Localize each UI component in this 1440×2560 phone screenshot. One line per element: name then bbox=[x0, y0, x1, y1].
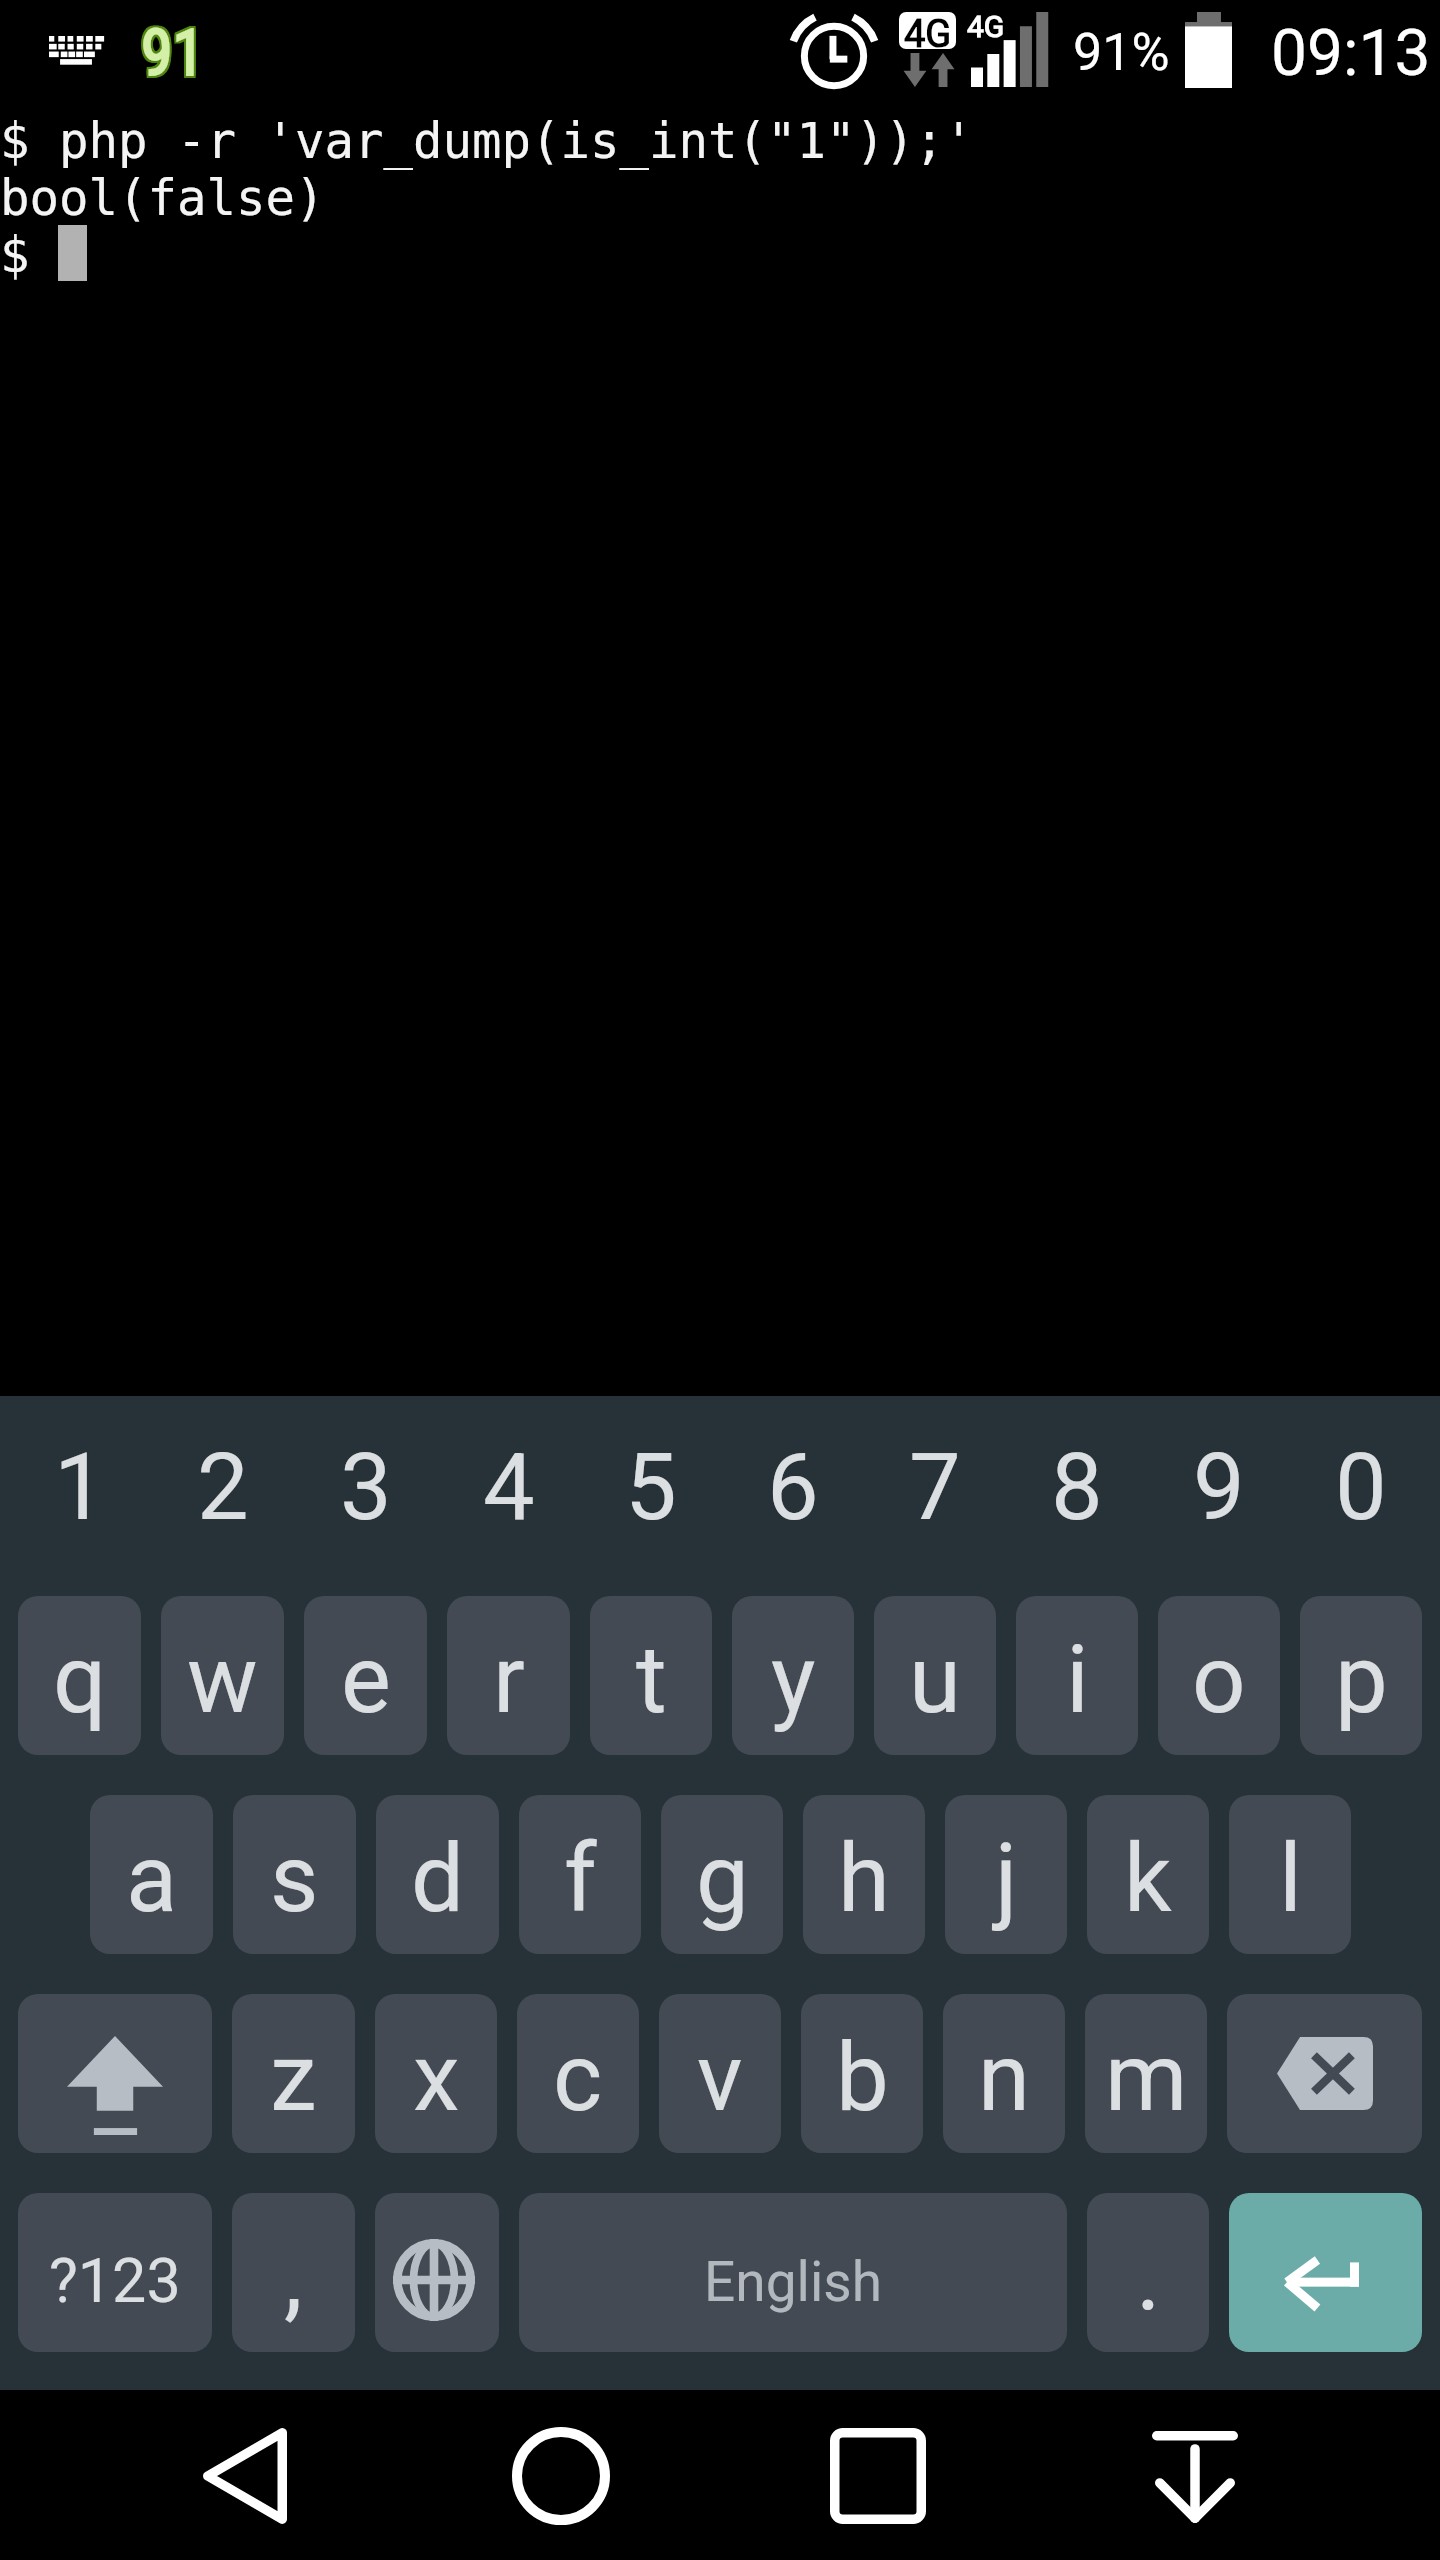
staticText: d bbox=[411, 1824, 465, 1934]
staticText: 09:13 bbox=[1271, 16, 1431, 91]
staticText: p bbox=[1335, 1625, 1388, 1735]
staticText: 5 bbox=[625, 1434, 677, 1542]
button[interactable]: h bbox=[803, 1795, 925, 1954]
button[interactable]: 7 bbox=[864, 1396, 1006, 1590]
staticText: v bbox=[697, 2023, 743, 2133]
button[interactable]: English bbox=[519, 2193, 1067, 2352]
button[interactable]: , bbox=[232, 2193, 355, 2352]
staticText: 0 bbox=[1335, 1434, 1387, 1542]
button[interactable]: 4 bbox=[437, 1396, 580, 1590]
staticText: f bbox=[564, 1824, 597, 1934]
button[interactable]: . bbox=[1087, 2193, 1209, 2352]
button[interactable]: i bbox=[1016, 1596, 1138, 1755]
staticText: 91 bbox=[143, 14, 207, 89]
staticText: 4G bbox=[904, 12, 952, 49]
button[interactable]: t bbox=[590, 1596, 712, 1755]
staticText: 9 bbox=[1193, 1434, 1245, 1542]
staticText: u bbox=[909, 1625, 961, 1735]
staticText: s bbox=[270, 1824, 319, 1934]
button[interactable]: 9 bbox=[1148, 1396, 1290, 1590]
staticText: 4G bbox=[967, 9, 1005, 44]
staticText: English bbox=[704, 2250, 882, 2314]
button[interactable]: j bbox=[945, 1795, 1067, 1954]
button[interactable]: n bbox=[943, 1994, 1065, 2153]
button[interactable]: Hide keyboard bbox=[1152, 2431, 1238, 2523]
staticText: 6 bbox=[767, 1434, 819, 1542]
staticText: 91 bbox=[143, 16, 207, 91]
staticText: 91 bbox=[141, 16, 205, 91]
button[interactable]: g bbox=[661, 1795, 783, 1954]
button[interactable]: c bbox=[517, 1994, 639, 2153]
staticText: w bbox=[187, 1625, 258, 1735]
staticText: 91 bbox=[139, 16, 203, 91]
button[interactable]: q bbox=[18, 1596, 141, 1755]
staticText: , bbox=[284, 2222, 303, 2332]
button[interactable]: o bbox=[1158, 1596, 1280, 1755]
button[interactable]: z bbox=[232, 1994, 355, 2153]
button[interactable]: w bbox=[161, 1596, 284, 1755]
button[interactable]: Recent apps bbox=[830, 2428, 926, 2524]
button[interactable]: 6 bbox=[722, 1396, 864, 1590]
staticText: x bbox=[413, 2023, 460, 2133]
staticText: h bbox=[838, 1824, 890, 1934]
button[interactable]: 0 bbox=[1290, 1396, 1432, 1590]
staticText: c bbox=[553, 2023, 603, 2133]
button[interactable]: 8 bbox=[1006, 1396, 1148, 1590]
button[interactable]: 1 bbox=[8, 1396, 151, 1590]
staticText: ?123 bbox=[49, 2245, 181, 2316]
button[interactable]: p bbox=[1300, 1596, 1422, 1755]
button[interactable]: e bbox=[304, 1596, 427, 1755]
staticText: 4 bbox=[483, 1434, 535, 1542]
staticText: 91 bbox=[141, 18, 205, 93]
button[interactable]: f bbox=[519, 1795, 641, 1954]
button[interactable]: r bbox=[447, 1596, 570, 1755]
staticText: 7 bbox=[909, 1434, 961, 1542]
button[interactable]: Back bbox=[203, 2428, 287, 2524]
button[interactable]: a bbox=[90, 1795, 213, 1954]
staticText: q bbox=[53, 1625, 107, 1735]
button[interactable]: d bbox=[376, 1795, 499, 1954]
button[interactable]: s bbox=[233, 1795, 356, 1954]
button[interactable]: y bbox=[732, 1596, 854, 1755]
staticText: j bbox=[995, 1824, 1018, 1934]
button[interactable]: l bbox=[1229, 1795, 1351, 1954]
staticText: a bbox=[126, 1824, 178, 1934]
staticText: z bbox=[270, 2023, 317, 2133]
staticText: 91 bbox=[139, 14, 203, 89]
staticText: 3 bbox=[340, 1434, 392, 1542]
staticText: r bbox=[493, 1625, 525, 1735]
staticText: bool(false) bbox=[0, 170, 325, 227]
staticText: m bbox=[1105, 2023, 1188, 2133]
button[interactable]: Enter bbox=[1229, 2193, 1422, 2352]
button[interactable]: b bbox=[801, 1994, 923, 2153]
staticText: o bbox=[1192, 1625, 1246, 1735]
staticText: 2 bbox=[197, 1434, 249, 1542]
staticText: $ php -r 'var_dump(is_int("1"));' bbox=[0, 113, 974, 170]
button[interactable]: k bbox=[1087, 1795, 1209, 1954]
button[interactable]: v bbox=[659, 1994, 781, 2153]
staticText: 8 bbox=[1051, 1434, 1103, 1542]
staticText: y bbox=[771, 1625, 816, 1735]
button[interactable]: Change keyboard language bbox=[375, 2193, 499, 2352]
button[interactable]: m bbox=[1085, 1994, 1207, 2153]
staticText: n bbox=[978, 2023, 1030, 2133]
staticText: i bbox=[1066, 1625, 1089, 1735]
button[interactable]: Shift bbox=[18, 1994, 212, 2153]
button[interactable]: Backspace bbox=[1227, 1994, 1422, 2153]
staticText: 91 bbox=[141, 14, 205, 89]
staticText: . bbox=[1136, 2222, 1161, 2332]
staticText: g bbox=[696, 1824, 749, 1934]
staticText: 91% bbox=[1073, 22, 1170, 83]
button[interactable]: 3 bbox=[294, 1396, 437, 1590]
staticText: $ bbox=[0, 227, 30, 284]
button[interactable]: Home bbox=[512, 2427, 610, 2525]
staticText: b bbox=[836, 2023, 889, 2133]
button[interactable]: ?123 bbox=[18, 2193, 212, 2352]
button[interactable]: u bbox=[874, 1596, 996, 1755]
staticText: 91 bbox=[143, 18, 207, 93]
button[interactable]: 2 bbox=[151, 1396, 294, 1590]
staticText: t bbox=[636, 1625, 667, 1735]
staticText: 91 bbox=[139, 18, 203, 93]
button[interactable]: 5 bbox=[580, 1396, 722, 1590]
button[interactable]: x bbox=[375, 1994, 497, 2153]
